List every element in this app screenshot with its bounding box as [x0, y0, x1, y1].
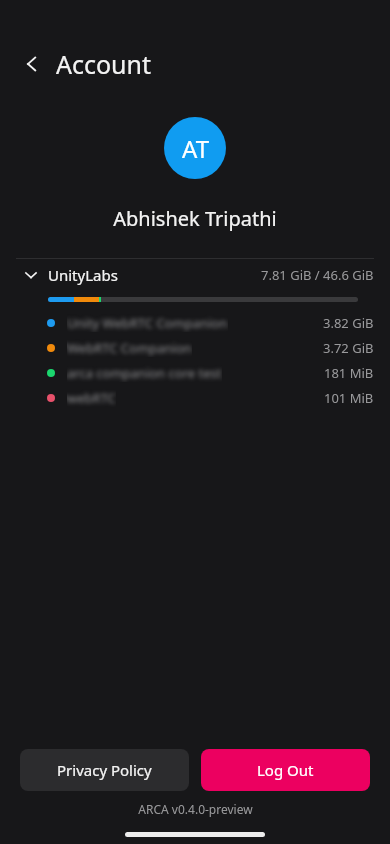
staticText: ARCA v0.4.0-preview	[138, 801, 253, 817]
button[interactable]: webRTC	[0, 385, 390, 410]
button[interactable]: Back	[14, 46, 50, 82]
button[interactable]: Privacy Policy	[20, 749, 189, 791]
staticText: UnityLabs	[48, 265, 118, 285]
staticText: 3.82 GiB	[323, 314, 374, 332]
button[interactable]: AT	[164, 117, 226, 179]
button[interactable]: Unity WebRTC Companion	[0, 310, 390, 335]
staticText: 7.81 GiB / 46.6 GiB	[261, 266, 374, 284]
staticText: Abhishek Tripathi	[113, 205, 277, 232]
staticText: Log Out	[257, 760, 314, 780]
button[interactable]: Log Out	[201, 749, 370, 791]
staticText: arca companion core test	[67, 364, 222, 382]
staticText: Privacy Policy	[57, 760, 152, 780]
staticText: WebRTC Companion	[67, 339, 192, 357]
button[interactable]: WebRTC Companion	[0, 335, 390, 360]
staticText: webRTC	[67, 389, 116, 407]
staticText: Account	[56, 47, 152, 81]
staticText: 181 MiB	[324, 364, 374, 382]
button[interactable]: UnityLabs	[0, 259, 390, 291]
staticText: AT	[182, 132, 209, 165]
staticText: 101 MiB	[324, 389, 374, 407]
staticText: Unity WebRTC Companion	[67, 314, 228, 332]
button[interactable]: arca companion core test	[0, 360, 390, 385]
staticText: 3.72 GiB	[323, 339, 374, 357]
